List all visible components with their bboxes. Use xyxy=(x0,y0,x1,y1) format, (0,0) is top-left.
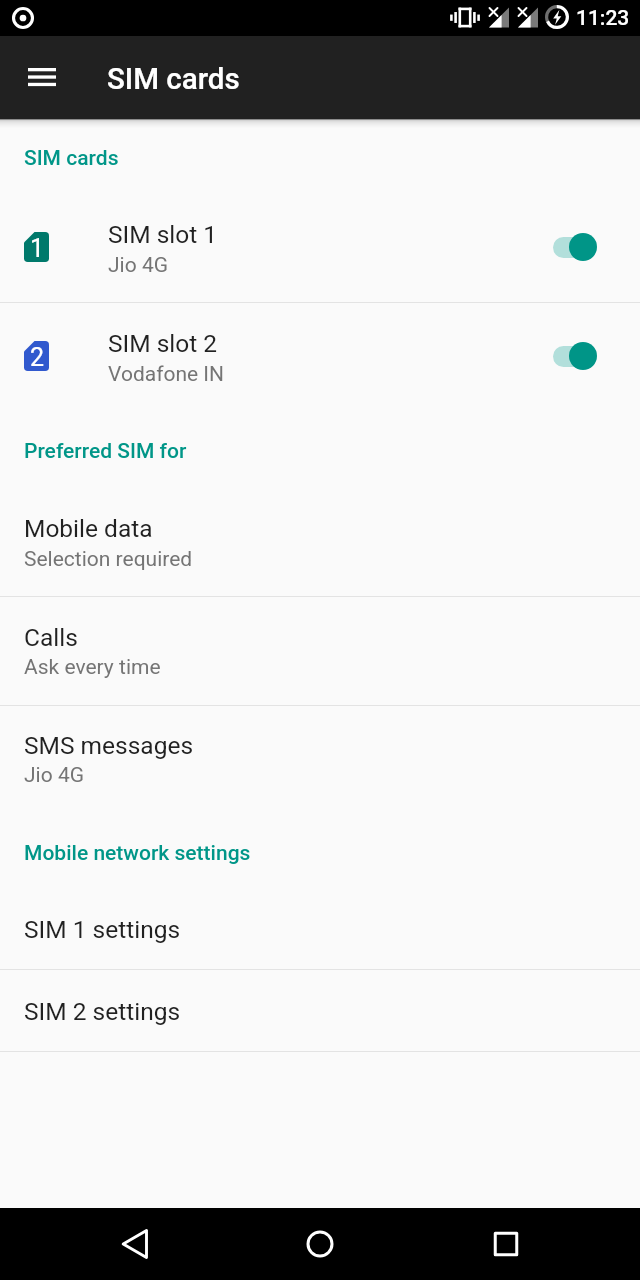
button[interactable]: Mobile data xyxy=(0,499,640,596)
staticText: Vodafone IN xyxy=(108,362,225,387)
staticText: Mobile network settings xyxy=(24,841,251,866)
staticText: Selection required xyxy=(24,547,193,572)
staticText: Jio 4G xyxy=(24,763,84,788)
button[interactable]: Recent apps xyxy=(458,1208,554,1280)
staticText: SIM 1 settings xyxy=(24,915,181,944)
staticText: Jio 4G xyxy=(108,253,168,278)
staticText: SIM slot 2 xyxy=(108,329,218,358)
button[interactable]: Home xyxy=(272,1208,368,1280)
button[interactable]: 2 xyxy=(0,314,640,410)
staticText: Preferred SIM for xyxy=(24,439,187,464)
button[interactable]: Back xyxy=(87,1208,183,1280)
staticText: SIM 2 settings xyxy=(24,997,181,1026)
staticText: SIM cards xyxy=(24,146,119,171)
staticText: SMS messages xyxy=(24,731,194,760)
staticText: 11:23 xyxy=(576,6,630,31)
staticText: Mobile data xyxy=(24,514,153,543)
button[interactable]: SIM 1 settings xyxy=(0,888,640,969)
staticText: 2 xyxy=(30,343,45,372)
button[interactable]: SIM 2 settings xyxy=(0,970,640,1051)
button[interactable]: SMS messages xyxy=(0,717,640,814)
button[interactable]: Toggle SIM xyxy=(552,335,608,377)
staticText: Calls xyxy=(24,623,78,652)
button[interactable]: Open navigation drawer xyxy=(0,45,84,110)
button[interactable]: 1 xyxy=(0,205,640,301)
button[interactable]: Toggle SIM xyxy=(552,226,608,268)
staticText: SIM cards xyxy=(107,62,240,97)
button[interactable]: Calls xyxy=(0,608,640,705)
staticText: SIM slot 1 xyxy=(108,220,218,249)
staticText: Ask every time xyxy=(24,655,161,680)
staticText: 1 xyxy=(30,234,45,263)
